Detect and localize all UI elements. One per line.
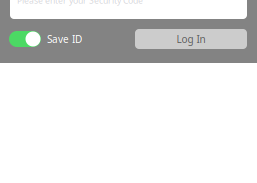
staticText: Please enter your Security Code [17, 0, 143, 6]
staticText: Log In [176, 32, 205, 46]
button[interactable]: Security Code [10, 0, 247, 19]
button[interactable]: Log In [135, 29, 247, 49]
button[interactable]: Save ID [9, 31, 41, 47]
staticText: Save ID [47, 32, 82, 46]
